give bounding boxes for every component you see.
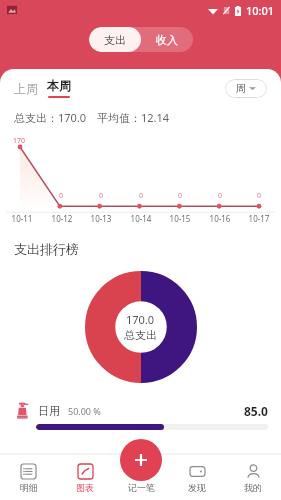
staticText: 明细 — [20, 482, 38, 493]
staticText: 170 — [13, 136, 26, 146]
staticText: 总支出：170.0 — [14, 110, 87, 125]
button[interactable]: 记一笔 — [113, 454, 169, 500]
staticText: 支出 — [104, 33, 126, 47]
staticText: 收入 — [156, 33, 178, 47]
staticText: 0 — [59, 191, 64, 201]
staticText: 总支出 — [124, 328, 157, 342]
staticText: 平均值：12.14 — [97, 110, 170, 125]
staticText: 50.00 % — [68, 405, 101, 417]
staticText: 周 — [236, 82, 246, 95]
staticText: 10-17 — [241, 213, 277, 224]
staticText: 图表 — [76, 482, 94, 493]
staticText: 0 — [218, 191, 223, 201]
button[interactable]: 发现 — [169, 454, 225, 500]
staticText: 0 — [139, 191, 144, 201]
staticText: 本周 — [47, 78, 71, 93]
staticText: 10-16 — [202, 213, 238, 224]
button[interactable]: 周 — [225, 79, 267, 98]
staticText: 10-12 — [44, 213, 80, 224]
button[interactable]: 上周 — [14, 81, 40, 96]
staticText: 10:01 — [246, 3, 275, 18]
staticText: 10-15 — [162, 213, 198, 224]
staticText: 支出排行榜 — [14, 241, 79, 257]
staticText: 0 — [257, 191, 262, 201]
staticText: 记一笔 — [128, 482, 155, 493]
staticText: 0 — [99, 191, 104, 201]
staticText: 10-11 — [4, 213, 40, 224]
staticText: 上周 — [14, 81, 38, 96]
staticText: 我的 — [244, 482, 262, 493]
staticText: 10-13 — [83, 213, 119, 224]
staticText: 170.0 — [126, 312, 155, 327]
staticText: 发现 — [188, 482, 206, 493]
button[interactable]: 图表 — [57, 454, 113, 500]
button[interactable]: 我的 — [225, 454, 281, 500]
staticText: 85.0 — [244, 403, 268, 419]
button[interactable]: 支出 — [89, 27, 141, 52]
button[interactable]: 收入 — [141, 27, 193, 52]
button[interactable]: 明细 — [0, 454, 57, 500]
staticText: 0 — [178, 191, 183, 201]
button[interactable]: 本周 — [47, 78, 71, 98]
staticText: 日用 — [38, 404, 60, 418]
staticText: 10-14 — [123, 213, 159, 224]
button[interactable]: 记一笔 — [120, 439, 162, 481]
button[interactable]: 日用 — [0, 398, 281, 430]
